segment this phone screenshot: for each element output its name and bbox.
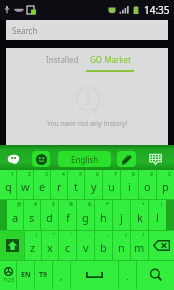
staticText: u bbox=[108, 179, 115, 194]
button[interactable]: Shift bbox=[0, 231, 24, 260]
staticText: 0 bbox=[168, 171, 171, 178]
staticText: h bbox=[100, 210, 107, 225]
staticText: 9 bbox=[150, 171, 153, 178]
button[interactable]: Installed bbox=[39, 48, 86, 74]
button[interactable]: 4 bbox=[51, 170, 67, 199]
staticText: f bbox=[66, 210, 70, 225]
staticText: . bbox=[126, 270, 129, 282]
staticText: z bbox=[30, 240, 36, 255]
button[interactable]: Keyboard layout bbox=[147, 150, 164, 167]
button[interactable]: ; bbox=[95, 231, 112, 260]
staticText: 3 bbox=[45, 171, 48, 178]
staticText: s bbox=[29, 210, 35, 225]
button[interactable]: ' bbox=[59, 231, 76, 260]
staticText: : bbox=[89, 232, 91, 239]
staticText: x bbox=[47, 240, 53, 255]
staticText: p bbox=[162, 179, 169, 194]
staticText: + bbox=[142, 201, 145, 208]
staticText: * bbox=[106, 201, 109, 208]
staticText: b bbox=[100, 240, 107, 255]
staticText: - bbox=[125, 201, 127, 208]
button[interactable]: @ bbox=[7, 200, 23, 230]
staticText: T9 bbox=[39, 270, 48, 280]
staticText: l bbox=[156, 210, 159, 225]
button[interactable]: & bbox=[77, 200, 94, 230]
staticText: 4 bbox=[62, 171, 65, 178]
staticText: y bbox=[91, 179, 97, 194]
button[interactable]: ! bbox=[25, 231, 41, 260]
button[interactable]: % bbox=[59, 200, 76, 230]
button[interactable]: , bbox=[53, 261, 70, 289]
button[interactable]: ? bbox=[131, 231, 148, 260]
staticText: 14:35 bbox=[144, 3, 170, 17]
staticText: ? bbox=[142, 232, 145, 239]
staticText: You have not any history! bbox=[47, 119, 128, 128]
button[interactable]: # bbox=[24, 200, 40, 230]
staticText: 5 bbox=[79, 171, 82, 178]
staticText: @ bbox=[17, 201, 22, 208]
staticText: 1 bbox=[11, 171, 14, 178]
button[interactable]: English bbox=[58, 151, 111, 167]
button[interactable]: Symbols bbox=[0, 261, 16, 289]
staticText: n bbox=[118, 240, 125, 255]
staticText: ' bbox=[71, 232, 73, 239]
staticText: EN bbox=[21, 270, 31, 280]
staticText: m bbox=[134, 240, 145, 255]
staticText: GO Market bbox=[90, 54, 131, 65]
staticText: k bbox=[137, 210, 143, 225]
button[interactable]: " bbox=[42, 231, 58, 260]
staticText: & bbox=[88, 201, 92, 208]
button[interactable]: 5 bbox=[68, 170, 84, 199]
staticText: 7 bbox=[114, 171, 117, 178]
staticText: ! bbox=[36, 232, 38, 239]
staticText: q bbox=[5, 179, 12, 194]
staticText: $ bbox=[52, 201, 55, 208]
staticText: j bbox=[120, 210, 123, 225]
button[interactable]: 9 bbox=[139, 170, 156, 199]
staticText: 6 bbox=[96, 171, 99, 178]
staticText: e bbox=[39, 179, 46, 194]
button[interactable]: EN bbox=[17, 261, 34, 289]
button[interactable]: 0 bbox=[157, 170, 174, 199]
staticText: / bbox=[125, 232, 127, 239]
staticText: Search bbox=[12, 25, 38, 36]
button[interactable]: ( bbox=[149, 200, 166, 230]
staticText: g bbox=[82, 210, 89, 225]
staticText: # bbox=[34, 201, 38, 208]
staticText: a bbox=[12, 210, 19, 225]
button[interactable]: Handwriting bbox=[117, 151, 136, 167]
staticText: v bbox=[83, 240, 89, 255]
staticText: % bbox=[69, 201, 74, 208]
button[interactable]: + bbox=[131, 200, 148, 230]
button[interactable]: Emoji bbox=[32, 151, 50, 167]
staticText: o bbox=[144, 179, 151, 194]
staticText: , bbox=[60, 270, 63, 282]
button[interactable]: 7 bbox=[103, 170, 120, 199]
button[interactable]: GO Market bbox=[86, 48, 134, 74]
staticText: English bbox=[71, 154, 99, 165]
button[interactable]: 2 bbox=[17, 170, 33, 199]
button[interactable]: 6 bbox=[85, 170, 102, 199]
button[interactable]: . bbox=[119, 261, 136, 289]
staticText: Installed bbox=[46, 54, 79, 65]
button[interactable]: T9 bbox=[35, 261, 52, 289]
staticText: ; bbox=[107, 232, 109, 239]
staticText: 2 bbox=[28, 171, 31, 178]
button[interactable]: 1 bbox=[0, 170, 16, 199]
button[interactable]: Search bbox=[137, 261, 174, 289]
button[interactable]: / bbox=[113, 231, 130, 260]
staticText: 8 bbox=[132, 171, 135, 178]
staticText: i bbox=[128, 179, 131, 194]
button[interactable]: - bbox=[113, 200, 130, 230]
button[interactable]: 8 bbox=[121, 170, 138, 199]
button[interactable]: Space bbox=[71, 261, 118, 289]
staticText: w bbox=[21, 179, 30, 194]
button[interactable]: $ bbox=[41, 200, 58, 230]
button[interactable]: : bbox=[77, 231, 94, 260]
button[interactable]: * bbox=[95, 200, 112, 230]
staticText: ?123 bbox=[3, 277, 14, 284]
button[interactable]: GO Keyboard menu bbox=[7, 152, 20, 165]
button[interactable]: 3 bbox=[34, 170, 50, 199]
button[interactable]: Search bbox=[6, 20, 168, 40]
button[interactable]: Backspace bbox=[149, 231, 174, 260]
